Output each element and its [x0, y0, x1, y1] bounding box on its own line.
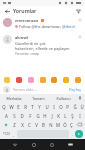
staticText: H: [43, 113, 47, 119]
staticText: Yorumlar cevap: [15, 52, 40, 56]
button[interactable]: Ğ: [71, 102, 78, 111]
staticText: J: [51, 113, 53, 119]
button[interactable]: Z: [10, 120, 18, 129]
staticText: Paylaş: [69, 87, 81, 92]
button[interactable]: C: [26, 120, 33, 129]
button[interactable]: J: [48, 111, 55, 120]
button[interactable]: ,: [11, 130, 16, 138]
button[interactable]: P: [64, 102, 71, 111]
staticText: P: [66, 104, 69, 110]
button[interactable]: Ç: [68, 120, 75, 129]
button[interactable]: Recents: [47, 140, 56, 149]
button[interactable]: G: [34, 111, 41, 120]
staticText: Z: [13, 122, 16, 128]
button[interactable]: Merhaba: [2, 94, 26, 102]
staticText: Ş: [71, 113, 74, 119]
staticText: akinsel: [15, 35, 29, 40]
staticText: R: [24, 104, 27, 110]
staticText: Follow @the.downtown: [19, 24, 61, 29]
button[interactable]: Ü: [78, 102, 85, 111]
staticText: Merhaba: [6, 96, 22, 101]
button[interactable]: Q: [0, 102, 8, 111]
button[interactable]: Back: [10, 140, 19, 149]
staticText: B: [42, 122, 45, 128]
button[interactable]: Tamam: [26, 94, 51, 102]
button[interactable]: Keyboard: [66, 140, 75, 149]
button[interactable]: Home: [29, 140, 38, 149]
staticText: ,: [13, 132, 15, 137]
staticText: I: [79, 113, 81, 119]
staticText: T: [31, 104, 34, 110]
staticText: X: [21, 122, 24, 128]
staticText: Y: [38, 104, 41, 110]
button[interactable]: Shift: [1, 120, 10, 129]
staticText: Güzellerdi en çok: [15, 41, 46, 46]
button[interactable]: B: [40, 120, 47, 129]
button[interactable]: K: [55, 111, 62, 120]
button[interactable]: Ş: [69, 111, 76, 120]
staticText: Kullanıcı: [56, 96, 71, 101]
button[interactable]: X: [18, 120, 26, 129]
staticText: @the.downtown: [62, 24, 76, 29]
button[interactable]: S: [10, 111, 18, 120]
button[interactable]: akinsel: [0, 32, 85, 59]
button[interactable]: U: [43, 102, 50, 111]
button[interactable]: Emoji: [27, 76, 35, 84]
button[interactable]: Back: [3, 7, 11, 15]
button[interactable]: Backspace: [75, 120, 84, 129]
staticText: Yorumlar: [13, 7, 37, 14]
button[interactable]: A: [2, 111, 10, 120]
staticText: F: [29, 113, 32, 119]
staticText: D: [20, 113, 24, 119]
button[interactable]: I: [50, 102, 57, 111]
button[interactable]: T: [29, 102, 36, 111]
staticText: Ö: [63, 122, 67, 128]
button[interactable]: Emoji: [74, 76, 82, 84]
staticText: S: [13, 113, 16, 119]
button[interactable]: Emoji: [62, 76, 70, 84]
button[interactable]: emrecanxxx: [0, 15, 85, 32]
staticText: L: [64, 113, 67, 119]
staticText: M: [56, 122, 60, 128]
button[interactable]: W: [8, 102, 15, 111]
button[interactable]: H: [41, 111, 48, 120]
staticText: N: [49, 122, 53, 128]
button[interactable]: Filter: [74, 7, 82, 15]
button[interactable]: Send: [75, 130, 83, 138]
staticText: haberlerin, ellerde ve paylaşım: [15, 46, 70, 51]
button[interactable]: I: [76, 111, 83, 120]
button[interactable]: M: [54, 120, 61, 129]
staticText: I: [53, 104, 55, 110]
button[interactable]: Emoji: [3, 76, 11, 84]
button[interactable]: Emoji: [39, 76, 47, 84]
button[interactable]: N: [47, 120, 54, 129]
staticText: C: [28, 122, 31, 128]
staticText: Yorum ekle...: [13, 87, 37, 92]
button[interactable]: ?123: [1, 130, 11, 138]
button[interactable]: R: [22, 102, 29, 111]
button[interactable]: Emoji: [15, 76, 23, 84]
staticText: G: [36, 113, 40, 119]
button[interactable]: Voice input: [76, 94, 83, 102]
staticText: ?123: [3, 132, 10, 136]
button[interactable]: Paylaş: [68, 87, 82, 92]
button[interactable]: Ö: [61, 120, 68, 129]
staticText: Ç: [70, 122, 73, 128]
button[interactable]: L: [62, 111, 69, 120]
staticText: V: [35, 122, 38, 128]
staticText: Q: [2, 104, 6, 110]
button[interactable]: .: [70, 130, 75, 138]
button[interactable]: O: [57, 102, 64, 111]
staticText: Tamam: [32, 96, 45, 101]
button[interactable]: V: [33, 120, 40, 129]
staticText: K: [57, 113, 60, 119]
button[interactable]: Yorum ekle...: [13, 87, 68, 92]
staticText: W: [9, 104, 14, 110]
button[interactable]: E: [15, 102, 22, 111]
button[interactable]: Emoji: [50, 76, 58, 84]
button[interactable]: Y: [36, 102, 43, 111]
button[interactable]: Kullanıcı: [51, 94, 76, 102]
button[interactable]: D: [18, 111, 26, 120]
button[interactable]: F: [26, 111, 34, 120]
